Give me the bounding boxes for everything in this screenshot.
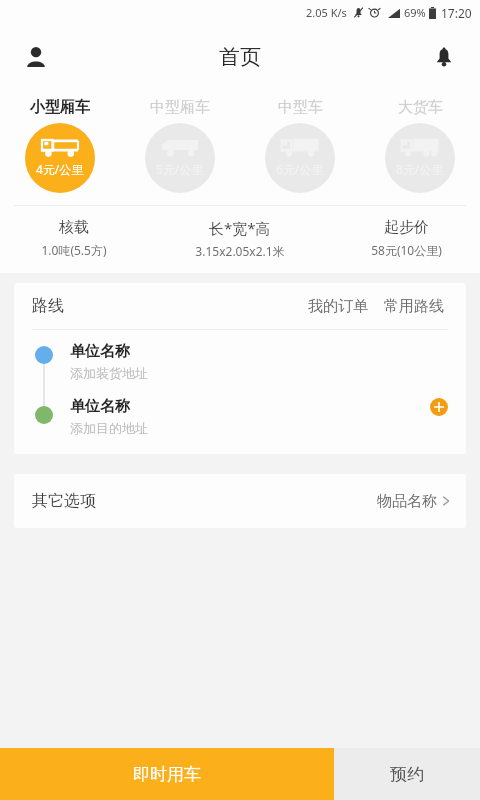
staticText: 起步价 [384,218,429,237]
staticText: 添加装货地址 [70,365,148,381]
staticText: 路线 [32,296,64,316]
staticText: 长*宽*高 [209,218,271,238]
staticText: 17:20 [441,5,472,21]
button[interactable]: 常用路线 [380,291,448,322]
staticText: 单位名称 [70,397,130,416]
button[interactable]: 其它选项 [14,474,466,528]
staticText: 我的订单 [308,297,368,316]
staticText: 1.0吨(5.5方) [41,242,107,258]
staticText: 4元/公里 [36,161,84,177]
staticText: 核载 [59,218,89,237]
button[interactable]: 大货车 [360,98,480,193]
button[interactable]: Add destination [430,398,448,416]
staticText: 中型厢车 [150,98,210,117]
button[interactable]: 预约 [334,748,480,800]
staticText: 69% [404,5,426,20]
staticText: 中型车 [278,98,323,117]
staticText: 预约 [390,764,424,785]
button[interactable]: 单位名称 [14,342,466,381]
button[interactable]: Profile [14,35,58,79]
staticText: 首页 [219,44,261,70]
button[interactable]: Notifications [422,35,466,79]
button[interactable]: 即时用车 [0,748,334,800]
staticText: 单位名称 [70,342,130,361]
button[interactable]: 中型厢车 [120,98,240,193]
staticText: 添加目的地址 [70,420,148,436]
staticText: 6元/公里 [276,161,324,177]
staticText: 常用路线 [384,297,444,316]
staticText: 大货车 [398,98,443,117]
staticText: 其它选项 [32,491,96,511]
staticText: 即时用车 [133,764,201,785]
staticText: 物品名称 [377,492,437,511]
button[interactable]: 我的订单 [304,291,372,322]
staticText: 2.05 K/s [306,5,347,20]
staticText: 小型厢车 [30,98,90,117]
button[interactable]: 中型车 [240,98,360,193]
staticText: 58元(10公里) [371,242,442,258]
button[interactable]: 小型厢车 [0,98,120,193]
staticText: 3.15x2.05x2.1米 [195,243,285,259]
staticText: 5元/公里 [156,161,204,177]
staticText: 8元/公里 [396,161,444,177]
button[interactable]: 单位名称 [14,397,466,436]
